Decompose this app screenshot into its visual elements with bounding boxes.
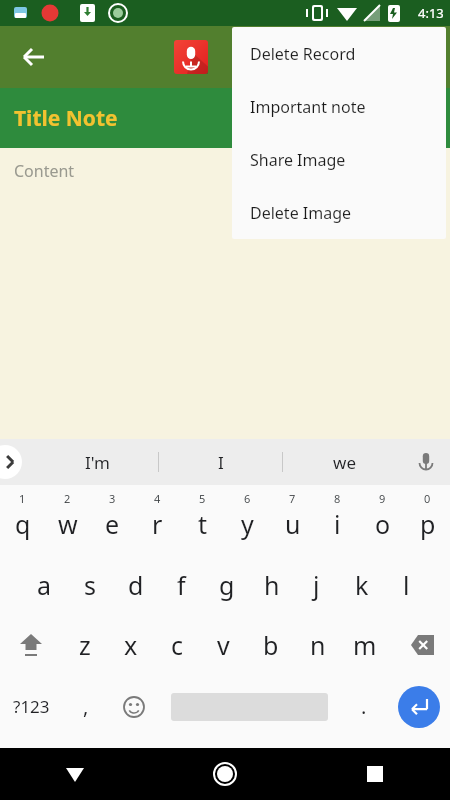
button[interactable]: 2 xyxy=(45,485,90,555)
button[interactable]: , xyxy=(62,675,110,738)
staticText: Title Note xyxy=(14,104,118,133)
button[interactable]: d xyxy=(113,555,159,615)
button[interactable]: I xyxy=(159,439,282,485)
button[interactable]: . xyxy=(340,675,388,738)
button[interactable]: Shift xyxy=(0,615,62,675)
button[interactable]: Emoji xyxy=(110,675,158,738)
staticText: x xyxy=(124,628,138,662)
staticText: w xyxy=(58,507,78,541)
staticText: 4:13 xyxy=(418,4,444,22)
button[interactable]: k xyxy=(339,555,384,615)
staticText: u xyxy=(285,507,301,541)
staticText: q xyxy=(15,507,31,541)
staticText: 2 xyxy=(64,491,71,506)
staticText: Delete Image xyxy=(250,202,352,224)
staticText: 6 xyxy=(244,491,251,506)
button[interactable]: z xyxy=(62,615,108,675)
staticText: n xyxy=(310,628,326,662)
staticText: f xyxy=(177,568,186,602)
staticText: ?123 xyxy=(13,695,50,718)
button[interactable]: f xyxy=(159,555,204,615)
staticText: b xyxy=(263,628,279,662)
staticText: l xyxy=(403,568,410,602)
staticText: 0 xyxy=(424,491,431,506)
staticText: r xyxy=(152,507,163,541)
staticText: Delete Record xyxy=(250,43,356,65)
button[interactable]: Back xyxy=(10,33,58,81)
button[interactable]: b xyxy=(247,615,294,675)
button[interactable]: n xyxy=(294,615,341,675)
button[interactable]: 9 xyxy=(360,485,405,555)
staticText: Content xyxy=(14,160,75,182)
button[interactable]: c xyxy=(154,615,200,675)
button[interactable]: 0 xyxy=(405,485,450,555)
button[interactable]: 5 xyxy=(180,485,225,555)
staticText: h xyxy=(264,568,280,602)
staticText: o xyxy=(375,507,391,541)
button[interactable]: 7 xyxy=(270,485,315,555)
button[interactable]: g xyxy=(204,555,249,615)
staticText: . xyxy=(361,693,367,720)
staticText: t xyxy=(198,507,208,541)
staticText: 4 xyxy=(154,491,161,506)
staticText: p xyxy=(420,507,436,541)
staticText: a xyxy=(37,568,52,602)
staticText: we xyxy=(333,451,356,474)
button[interactable]: Enter xyxy=(398,686,440,728)
button[interactable]: Delete Image xyxy=(232,186,446,239)
staticText: g xyxy=(219,568,235,602)
staticText: 7 xyxy=(289,491,296,506)
staticText: k xyxy=(355,568,369,602)
button[interactable]: Important note xyxy=(232,80,446,133)
button[interactable]: ?123 xyxy=(0,675,62,738)
staticText: j xyxy=(313,568,320,602)
staticText: m xyxy=(353,628,377,662)
staticText: d xyxy=(128,568,144,602)
button[interactable]: 6 xyxy=(225,485,270,555)
button[interactable]: l xyxy=(384,555,429,615)
button[interactable]: Record audio xyxy=(174,40,208,74)
staticText: c xyxy=(171,628,184,662)
button[interactable]: s xyxy=(67,555,113,615)
button[interactable]: Delete Record xyxy=(232,27,446,80)
staticText: 5 xyxy=(199,491,206,506)
staticText: Important note xyxy=(250,96,366,118)
button[interactable]: I'm xyxy=(36,439,158,485)
button[interactable]: m xyxy=(341,615,388,675)
button[interactable]: Voice input xyxy=(410,446,442,478)
button[interactable]: 3 xyxy=(90,485,135,555)
button[interactable]: v xyxy=(200,615,247,675)
button[interactable]: h xyxy=(249,555,294,615)
button[interactable]: Share Image xyxy=(232,133,446,186)
staticText: 8 xyxy=(334,491,341,506)
button[interactable]: j xyxy=(294,555,339,615)
staticText: z xyxy=(79,628,91,662)
button[interactable]: Title Note xyxy=(0,88,450,148)
staticText: e xyxy=(105,507,120,541)
button[interactable]: Home xyxy=(150,748,300,800)
button[interactable]: Recent apps xyxy=(300,748,450,800)
button[interactable]: More suggestions xyxy=(0,445,22,479)
staticText: 9 xyxy=(379,491,386,506)
staticText: v xyxy=(217,628,230,662)
staticText: , xyxy=(83,693,89,720)
staticText: y xyxy=(241,507,254,541)
button[interactable]: 1 xyxy=(0,485,45,555)
button[interactable]: 4 xyxy=(135,485,180,555)
staticText: s xyxy=(84,568,96,602)
staticText: 1 xyxy=(19,491,26,506)
button[interactable]: we xyxy=(283,439,406,485)
staticText: 3 xyxy=(109,491,116,506)
staticText: i xyxy=(334,507,341,541)
button[interactable]: Backspace xyxy=(388,615,450,675)
button[interactable]: a xyxy=(21,555,67,615)
button[interactable]: Back xyxy=(0,748,150,800)
button[interactable]: 8 xyxy=(315,485,360,555)
button[interactable]: x xyxy=(108,615,154,675)
staticText: I xyxy=(218,451,224,474)
staticText: Share Image xyxy=(250,149,346,171)
staticText: I'm xyxy=(85,451,110,474)
